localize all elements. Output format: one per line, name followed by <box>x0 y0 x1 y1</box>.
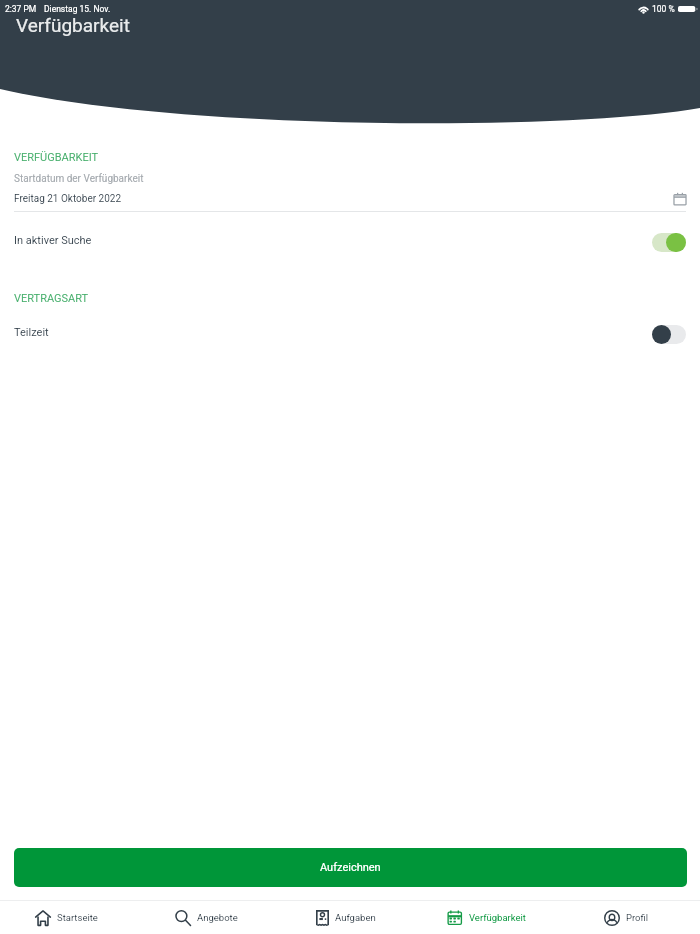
button[interactable]: Angebote <box>136 901 276 934</box>
button[interactable]: Profil <box>556 901 696 934</box>
button[interactable]: Teilzeit: aus <box>652 325 686 344</box>
button[interactable]: In aktiver Suche <box>0 226 700 259</box>
staticText: Verfügbarkeit <box>469 912 526 923</box>
staticText: In aktiver Suche <box>14 234 92 247</box>
other: WLAN <box>638 6 649 13</box>
button[interactable]: In aktiver Suche: an <box>652 233 686 252</box>
other: Datum auswählen <box>673 192 687 206</box>
staticText: Angebote <box>197 912 238 923</box>
staticText: 100 % <box>652 4 675 14</box>
staticText: VERTRAGSART <box>14 292 89 305</box>
staticText: Startseite <box>57 912 98 923</box>
staticText: 2:37 PM <box>5 4 37 14</box>
staticText: Dienstag 15. Nov. <box>44 4 111 14</box>
button[interactable]: Freitag 21 Oktober 2022 <box>0 187 700 211</box>
staticText: Aufgaben <box>335 912 376 923</box>
staticText: Aufzeichnen <box>320 861 381 874</box>
other: Akku <box>678 6 697 12</box>
button[interactable]: Aufzeichnen <box>14 848 687 887</box>
button[interactable]: Teilzeit <box>0 318 700 351</box>
button[interactable]: Aufgaben <box>276 901 416 934</box>
button[interactable]: Verfügbarkeit <box>416 901 556 934</box>
staticText: Freitag 21 Oktober 2022 <box>14 193 122 205</box>
staticText: Startdatum der Verfügbarkeit <box>14 173 144 185</box>
staticText: VERFÜGBARKEIT <box>14 151 99 164</box>
button[interactable]: Startseite <box>0 901 136 934</box>
staticText: Verfügbarkeit <box>16 14 130 36</box>
staticText: Profil <box>626 912 649 923</box>
staticText: Teilzeit <box>14 326 49 339</box>
